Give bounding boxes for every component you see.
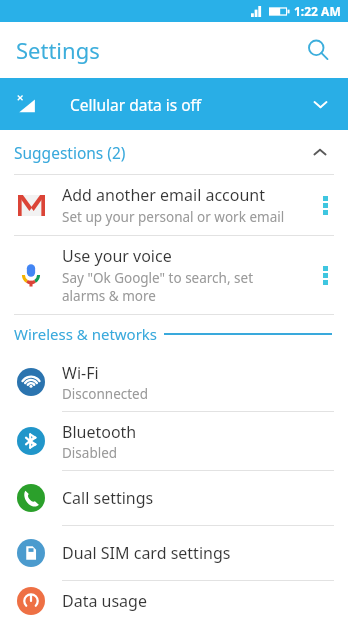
button[interactable]: Use your voice [0, 236, 348, 314]
staticText: Data usage [62, 590, 147, 612]
staticText: Add another email account [62, 184, 266, 206]
staticText: Cellular data is off [70, 94, 202, 115]
button[interactable]: Cellular data is off [0, 78, 348, 130]
button[interactable]: Call settings [0, 471, 348, 525]
staticText: 1:22 AM [294, 3, 341, 19]
other: Expand [300, 84, 340, 124]
button[interactable]: Bluetooth [0, 412, 348, 470]
button[interactable]: Add another email account [0, 175, 348, 235]
staticText: Use your voice [62, 245, 172, 267]
staticText: Wi-Fi [62, 362, 99, 384]
button[interactable]: More options [308, 258, 342, 292]
other: Collapse suggestions [300, 132, 340, 172]
staticText: Set up your personal or work email [62, 208, 285, 226]
staticText: Dual SIM card settings [62, 542, 231, 564]
staticText: Wireless & networks [14, 324, 158, 344]
staticText: Suggestions (2) [14, 142, 126, 163]
button[interactable]: Suggestions (2) [0, 130, 348, 174]
staticText: Disconnected [62, 385, 149, 403]
button[interactable]: Search [298, 30, 338, 70]
button[interactable]: More options [308, 188, 342, 222]
staticText: Say "Ok Google" to search, set alarms & … [62, 269, 254, 305]
button[interactable]: Data usage [0, 581, 348, 620]
staticText: Bluetooth [62, 421, 137, 443]
button[interactable]: Dual SIM card settings [0, 526, 348, 580]
staticText: Disabled [62, 444, 118, 462]
staticText: Call settings [62, 487, 154, 509]
button[interactable]: Wi-Fi [0, 353, 348, 411]
staticText: Settings [16, 35, 100, 65]
